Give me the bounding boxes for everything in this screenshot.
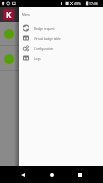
staticText: Menu [22,13,31,17]
staticText: K [6,9,12,20]
staticText: Badge request [34,27,55,31]
button[interactable]: Recent apps [71,166,88,183]
button[interactable]: Virtual badge table [19,34,103,44]
button[interactable]: Back [14,166,31,183]
staticText: Virtual badge table [34,37,61,41]
staticText: Logs [34,57,41,61]
button[interactable]: Home [43,166,60,183]
button[interactable]: App logo [3,9,14,20]
button[interactable]: Logs [19,54,103,64]
staticText: 49% [74,1,81,6]
staticText: Configuration [34,47,54,51]
staticText: 17:36 [89,1,98,6]
button[interactable]: Badge request [19,24,103,34]
button[interactable]: Configuration [19,44,103,54]
